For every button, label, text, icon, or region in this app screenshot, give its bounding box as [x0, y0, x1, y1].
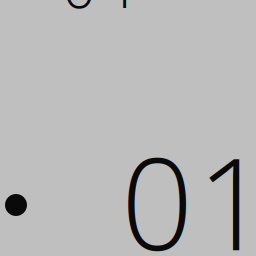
- staticText: 0: [121, 115, 193, 256]
- staticText: 4: [100, 0, 134, 26]
- staticText: 1: [197, 115, 256, 256]
- staticText: 0: [62, 0, 96, 26]
- button[interactable]: 0: [5, 141, 256, 256]
- button[interactable]: 0: [0, 0, 134, 13]
